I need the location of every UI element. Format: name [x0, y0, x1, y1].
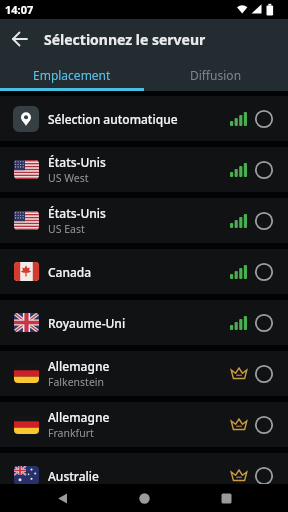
staticText: Diffusion — [190, 67, 242, 83]
button[interactable]: Diffusion — [144, 59, 288, 91]
staticText: Royaume-Uni — [48, 315, 126, 331]
button[interactable]: États-Unis — [0, 198, 288, 243]
staticText: Australie — [48, 468, 99, 484]
staticText: Frankfurt — [48, 426, 94, 440]
staticText: Falkenstein — [48, 375, 105, 389]
button[interactable]: Australie — [0, 453, 288, 498]
staticText: US East — [48, 222, 85, 236]
button[interactable]: Sélection automatique — [0, 96, 288, 141]
staticText: US West — [48, 171, 89, 185]
staticText: Sélection automatique — [48, 111, 178, 127]
button[interactable] — [103, 484, 185, 512]
button[interactable]: Allemagne — [0, 351, 288, 396]
button[interactable]: Emplacement — [0, 59, 144, 91]
staticText: Emplacement — [33, 67, 111, 83]
button[interactable] — [185, 484, 267, 512]
staticText: Sélectionnez le serveur — [44, 30, 206, 49]
staticText: États-Unis — [48, 154, 106, 170]
button[interactable] — [21, 484, 103, 512]
button[interactable] — [0, 19, 40, 59]
staticText: États-Unis — [48, 205, 106, 221]
staticText: 14:07 — [5, 2, 34, 17]
staticText: Allemagne — [48, 409, 110, 425]
button[interactable]: Royaume-Uni — [0, 300, 288, 345]
staticText: Canada — [48, 264, 92, 280]
button[interactable]: Canada — [0, 249, 288, 294]
button[interactable]: Allemagne — [0, 402, 288, 447]
button[interactable]: États-Unis — [0, 147, 288, 192]
staticText: Allemagne — [48, 358, 110, 374]
